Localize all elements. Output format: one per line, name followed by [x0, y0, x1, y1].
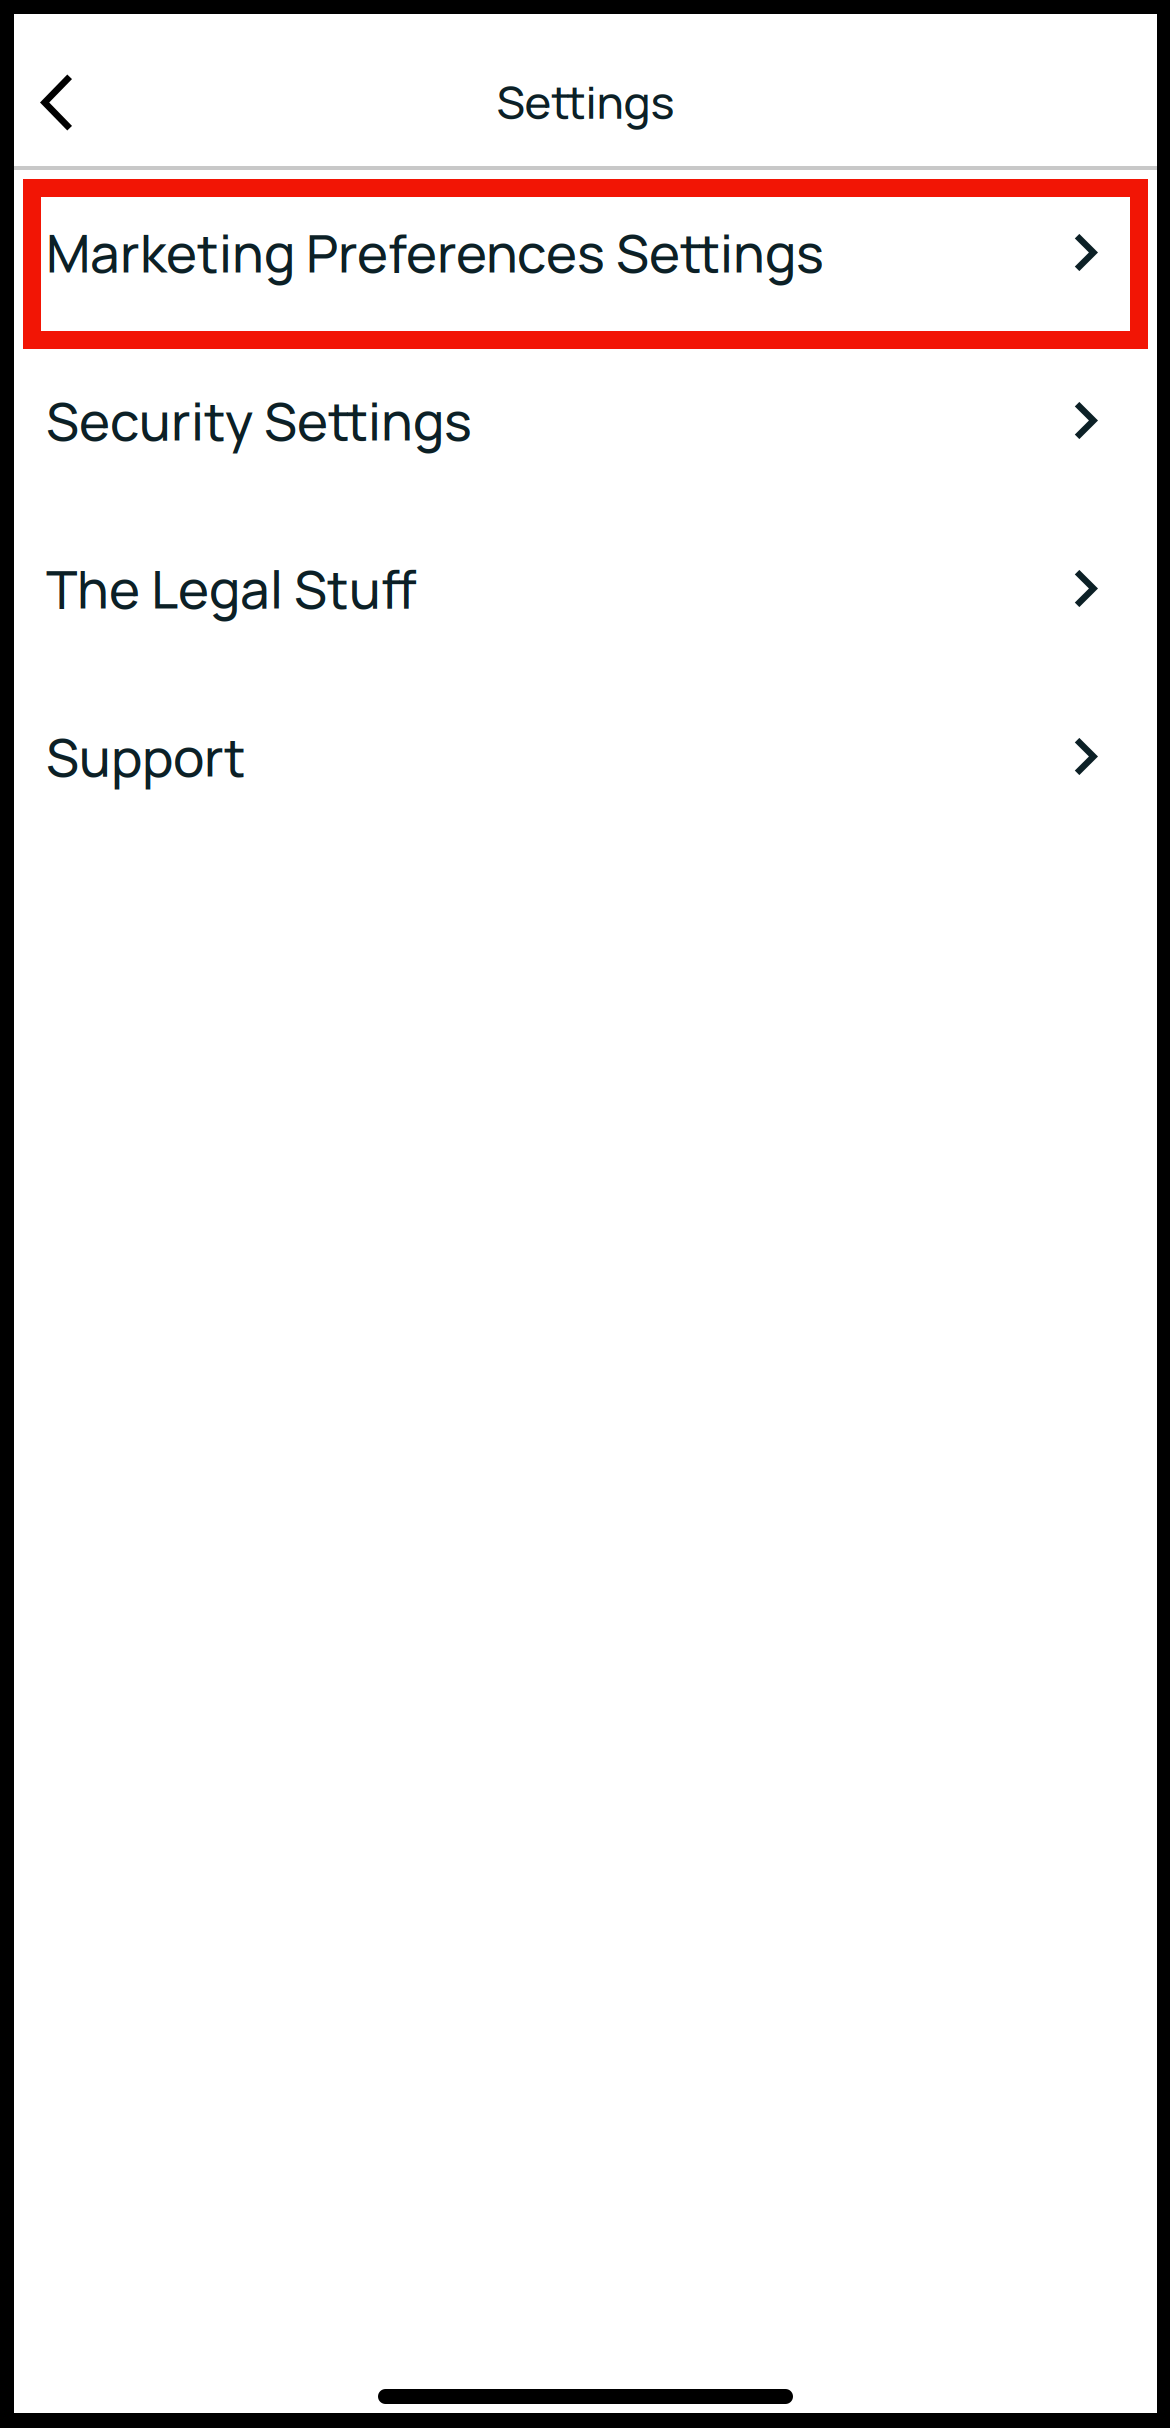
button[interactable]: Back — [6, 52, 106, 152]
staticText: Security Settings — [46, 385, 472, 456]
button[interactable]: Marketing Preferences Settings — [14, 168, 1157, 336]
staticText: Support — [46, 721, 246, 792]
staticText: Settings — [496, 70, 674, 132]
staticText: Marketing Preferences Settings — [46, 217, 824, 288]
button[interactable]: Support — [14, 672, 1157, 840]
staticText: The Legal Stuff — [46, 553, 417, 624]
button[interactable]: The Legal Stuff — [14, 504, 1157, 672]
button[interactable]: Security Settings — [14, 336, 1157, 504]
